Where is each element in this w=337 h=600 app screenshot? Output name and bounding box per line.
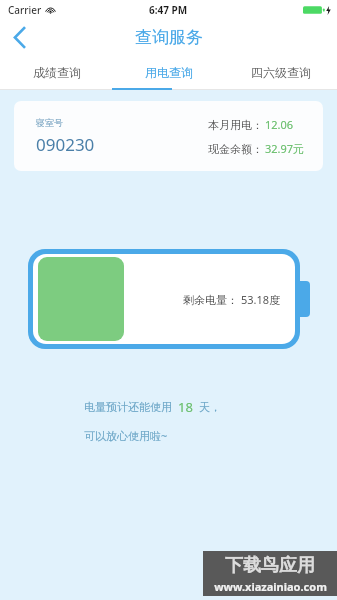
- staticText: 剩余电量：: [183, 293, 238, 307]
- button[interactable]: Back: [0, 20, 38, 54]
- staticText: 查询服务: [135, 27, 203, 48]
- staticText: 现金余额：: [208, 142, 263, 156]
- staticText: 53.18度: [241, 292, 281, 307]
- staticText: 寝室号: [36, 117, 63, 128]
- staticText: 32.97元: [265, 141, 305, 156]
- button[interactable]: 四六级查询: [225, 54, 337, 90]
- button[interactable]: 成绩查询: [0, 54, 113, 90]
- staticText: 电量预计还能使用: [84, 400, 172, 414]
- button[interactable]: 寝室号: [14, 101, 323, 171]
- staticText: 四六级查询: [251, 65, 311, 80]
- staticText: 用电查询: [145, 65, 193, 80]
- button[interactable]: 用电查询: [113, 54, 225, 90]
- staticText: 090230: [36, 133, 95, 156]
- staticText: www.xiazainiao.com: [214, 579, 327, 593]
- staticText: 18: [178, 398, 193, 416]
- staticText: Carrier: [8, 3, 42, 17]
- staticText: 6:47 PM: [149, 3, 188, 17]
- staticText: 可以放心使用啦~: [84, 428, 168, 443]
- staticText: 12.06: [265, 117, 294, 132]
- staticText: 天，: [199, 400, 221, 414]
- staticText: 下载鸟应用: [225, 554, 315, 577]
- staticText: 本月用电：: [208, 118, 263, 132]
- staticText: 成绩查询: [33, 65, 81, 80]
